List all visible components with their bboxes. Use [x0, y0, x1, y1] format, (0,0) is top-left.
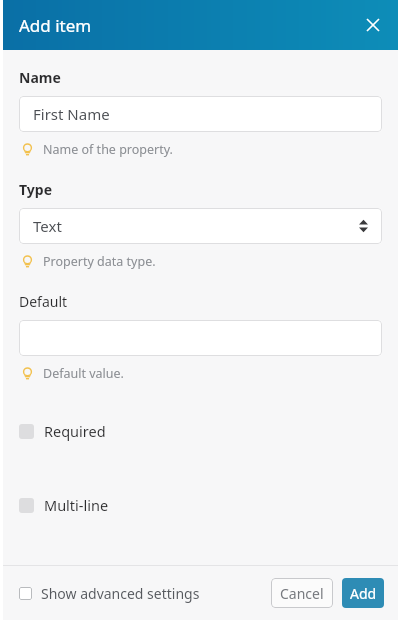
staticText: First Name	[33, 104, 110, 124]
staticText: Name of the property.	[43, 141, 173, 158]
staticText: Type	[19, 180, 52, 199]
button[interactable]: Cancel	[271, 578, 333, 608]
staticText: Required	[44, 421, 106, 441]
button[interactable]: Close	[357, 9, 389, 41]
staticText: Cancel	[280, 584, 324, 603]
staticText: Name	[19, 68, 61, 87]
button[interactable]: Text	[19, 208, 382, 244]
staticText: Add	[350, 584, 377, 603]
staticText: Multi-line	[44, 495, 109, 515]
button[interactable]	[19, 320, 382, 356]
button[interactable]: First Name	[19, 96, 382, 132]
staticText: Default value.	[43, 365, 124, 382]
button[interactable]: Required	[3, 414, 398, 448]
staticText: Text	[33, 216, 62, 236]
staticText: Property data type.	[43, 253, 156, 270]
button[interactable]: Multi-line	[3, 488, 398, 522]
staticText: Add item	[19, 14, 92, 37]
button[interactable]: Add	[342, 578, 384, 608]
staticText: Show advanced settings	[41, 584, 200, 603]
staticText: Default	[19, 292, 68, 311]
button[interactable]: Show advanced settings	[17, 578, 202, 609]
